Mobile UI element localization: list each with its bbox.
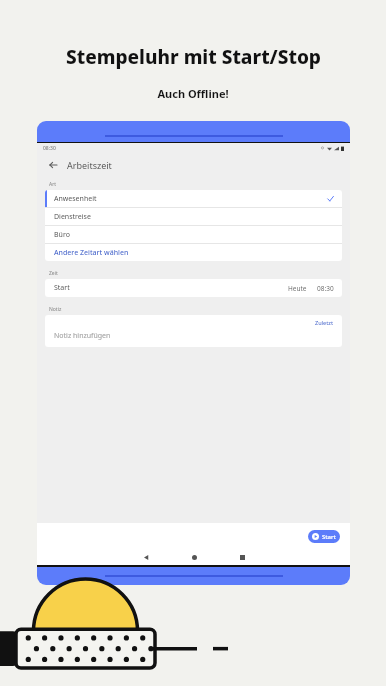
staticText: Start [322,533,336,541]
staticText: Heute [288,284,307,293]
staticText: Auch Offline! [157,86,229,101]
staticText: 08:30 [317,284,334,293]
button[interactable]: Zuletzt [315,319,334,326]
button[interactable]: Anwesenheit [45,190,342,207]
button[interactable]: Zurück [46,158,60,172]
button[interactable]: Zurück [135,549,157,565]
staticText: Notiz [49,306,62,313]
staticText: Arbeitszeit [67,159,112,171]
button[interactable]: Start [308,530,340,543]
staticText: Art [49,181,57,188]
button[interactable]: Notiz hinzufügen [54,331,111,341]
staticText: Stempeluhr mit Start/Stop [66,44,321,70]
staticText: Zeit [49,270,58,277]
staticText: Anwesenheit [54,194,327,204]
staticText: Büro [54,230,70,240]
button[interactable]: Startseite [183,549,205,565]
staticText: 08:30 [43,145,56,152]
staticText: Andere Zeitart wählen [54,248,129,258]
button[interactable]: Büro [45,226,342,243]
button[interactable]: Andere Zeitart wählen [45,244,342,261]
staticText: Start [54,283,288,293]
button[interactable]: Übersicht [231,549,253,565]
button[interactable]: Start [45,279,342,297]
button[interactable]: Dienstreise [45,208,342,225]
staticText: Dienstreise [54,212,91,222]
